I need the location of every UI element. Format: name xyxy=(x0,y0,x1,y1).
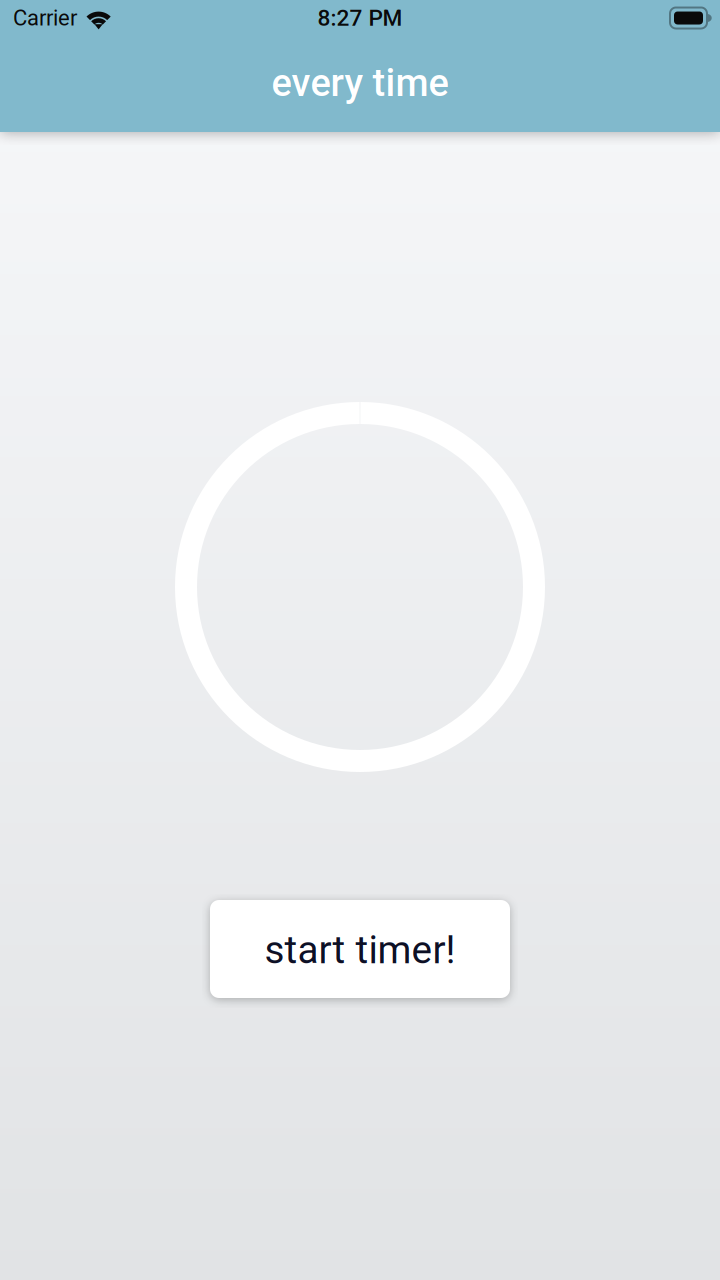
staticText: Carrier xyxy=(13,5,77,31)
staticText: start timer! xyxy=(264,927,455,973)
button[interactable]: start timer! xyxy=(210,900,510,998)
staticText: every time xyxy=(271,61,448,105)
staticText: 8:27 PM xyxy=(317,5,402,31)
